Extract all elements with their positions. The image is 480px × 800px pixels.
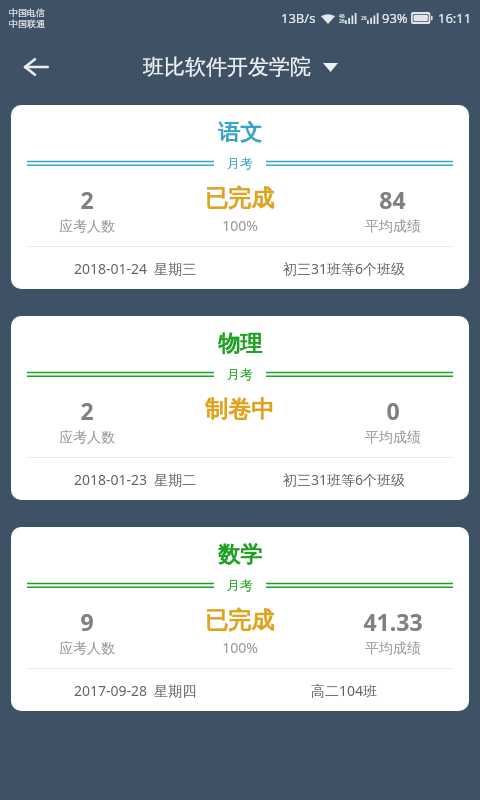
staticText: 13B/s: [281, 9, 316, 27]
button[interactable]: 物理: [11, 316, 469, 500]
button[interactable]: 班比软件开发学院: [137, 50, 344, 84]
staticText: 班比软件开发学院: [143, 54, 311, 80]
button[interactable]: Back: [10, 41, 62, 93]
staticText: 初三31班等6个班级: [283, 470, 406, 489]
staticText: 2017-09-28 星期四: [74, 681, 197, 700]
staticText: 2: [80, 395, 94, 426]
staticText: 已完成: [205, 606, 274, 635]
staticText: 84: [379, 184, 406, 215]
staticText: 月考: [227, 366, 253, 382]
staticText: 平均成绩: [365, 640, 421, 658]
staticText: 制卷中: [205, 395, 274, 424]
staticText: 月考: [227, 577, 253, 593]
staticText: 中国电信: [9, 7, 45, 18]
staticText: 41.33: [363, 606, 423, 637]
staticText: 平均成绩: [365, 218, 421, 236]
staticText: 100%: [222, 638, 258, 657]
button[interactable]: 数学: [11, 527, 469, 711]
staticText: 中国联通: [9, 18, 45, 29]
staticText: 应考人数: [59, 218, 115, 236]
staticText: 月考: [227, 155, 253, 171]
staticText: 平均成绩: [365, 429, 421, 447]
staticText: 2: [80, 184, 94, 215]
staticText: 初三31班等6个班级: [283, 259, 406, 278]
button[interactable]: 语文: [11, 105, 469, 289]
staticText: 高二104班: [311, 681, 378, 700]
staticText: 应考人数: [59, 640, 115, 658]
staticText: 应考人数: [59, 429, 115, 447]
staticText: 0: [386, 395, 400, 426]
staticText: 46 26: [339, 13, 345, 24]
staticText: 100%: [222, 216, 258, 235]
staticText: 已完成: [205, 184, 274, 213]
staticText: 93%: [382, 9, 408, 27]
staticText: 2018-01-24 星期三: [74, 259, 197, 278]
staticText: 26: [361, 15, 367, 22]
staticText: 物理: [11, 330, 469, 358]
staticText: 语文: [11, 119, 469, 147]
staticText: 9: [80, 606, 94, 637]
staticText: 16:11: [438, 9, 472, 27]
staticText: 2018-01-23 星期二: [74, 470, 197, 489]
staticText: 数学: [11, 541, 469, 569]
